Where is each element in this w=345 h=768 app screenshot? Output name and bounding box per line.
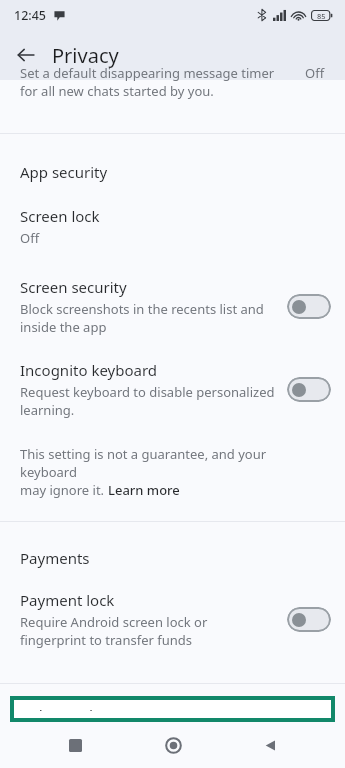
- staticText: Learn more: [108, 481, 180, 499]
- button[interactable]: Back: [8, 37, 44, 73]
- staticText: Screen security: [20, 277, 127, 297]
- staticText: Off: [20, 229, 40, 247]
- button[interactable]: Home: [151, 723, 195, 767]
- staticText: Off: [305, 64, 325, 82]
- button[interactable]: Toggle: [287, 294, 331, 319]
- button[interactable]: Incognito keyboard: [0, 350, 345, 431]
- button[interactable]: Recent apps: [53, 723, 97, 767]
- button[interactable]: Advanced: [10, 696, 335, 722]
- staticText: Incognito keyboard: [20, 360, 158, 380]
- staticText: may ignore it.: [20, 481, 108, 499]
- staticText: Set a default disappearing message timer…: [20, 64, 295, 100]
- staticText: 12:45: [14, 7, 47, 24]
- button[interactable]: Screen security: [0, 265, 345, 350]
- button[interactable]: Toggle: [287, 607, 331, 632]
- button[interactable]: Back: [248, 723, 292, 767]
- staticText: Screen lock: [20, 206, 100, 226]
- staticText: Payments: [20, 548, 90, 568]
- staticText: App security: [20, 162, 108, 182]
- staticText: Privacy: [52, 42, 119, 69]
- staticText: Advanced: [24, 705, 94, 711]
- button[interactable]: Toggle: [287, 377, 331, 402]
- staticText: Block screenshots in the recents list an…: [20, 300, 275, 336]
- button[interactable]: Payment lock: [0, 576, 345, 665]
- button[interactable]: Screen lock: [0, 192, 345, 265]
- staticText: Payment lock: [20, 590, 115, 610]
- button[interactable]: Learn more: [108, 481, 180, 499]
- staticText: This setting is not a guarantee, and you…: [20, 445, 325, 481]
- staticText: 85: [317, 11, 326, 21]
- button[interactable]: Set a default disappearing message timer…: [0, 80, 345, 133]
- staticText: Request keyboard to disable personalized…: [20, 383, 275, 419]
- staticText: Require Android screen lock or fingerpri…: [20, 613, 275, 649]
